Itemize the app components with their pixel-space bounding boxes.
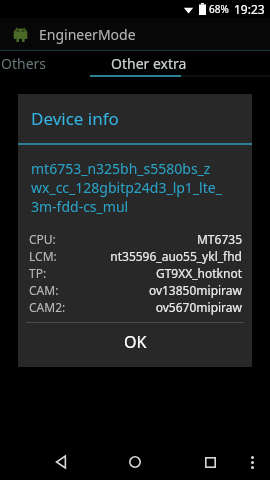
staticText: ov5670mipiraw	[155, 299, 242, 315]
staticText: Device info	[31, 107, 119, 130]
staticText: Others	[1, 54, 47, 73]
button[interactable]: Home	[121, 448, 149, 476]
staticText: MT6735	[196, 231, 242, 247]
staticText: 68%	[209, 2, 229, 16]
button[interactable]: Recent apps	[196, 448, 224, 476]
staticText: ov13850mipiraw	[148, 282, 242, 298]
staticText: wx_cc_128gbitp24d3_lp1_lte_	[31, 178, 222, 197]
staticText: CPU:	[29, 231, 56, 247]
staticText: mt6753_n325bh_s5580bs_z	[31, 159, 211, 178]
staticText: Other extra	[111, 54, 187, 73]
staticText: nt35596_auo55_ykl_fhd	[110, 248, 242, 264]
staticText: CAM:	[29, 282, 59, 298]
button[interactable]: OK	[18, 323, 252, 361]
staticText: OK	[124, 331, 147, 353]
staticText: 19:23	[234, 1, 265, 17]
staticText: LCM:	[29, 248, 57, 264]
button[interactable]: More options	[240, 450, 264, 474]
staticText: 3m-fdd-cs_mul	[31, 197, 129, 216]
staticText: TP:	[29, 265, 47, 281]
button[interactable]: Other extra	[104, 51, 194, 75]
staticText: CAM2:	[29, 299, 66, 315]
staticText: EngineerMode	[39, 25, 136, 44]
button[interactable]: Back	[48, 448, 76, 476]
button[interactable]: Others	[0, 51, 104, 75]
staticText: GT9XX_hotknot	[155, 265, 242, 281]
